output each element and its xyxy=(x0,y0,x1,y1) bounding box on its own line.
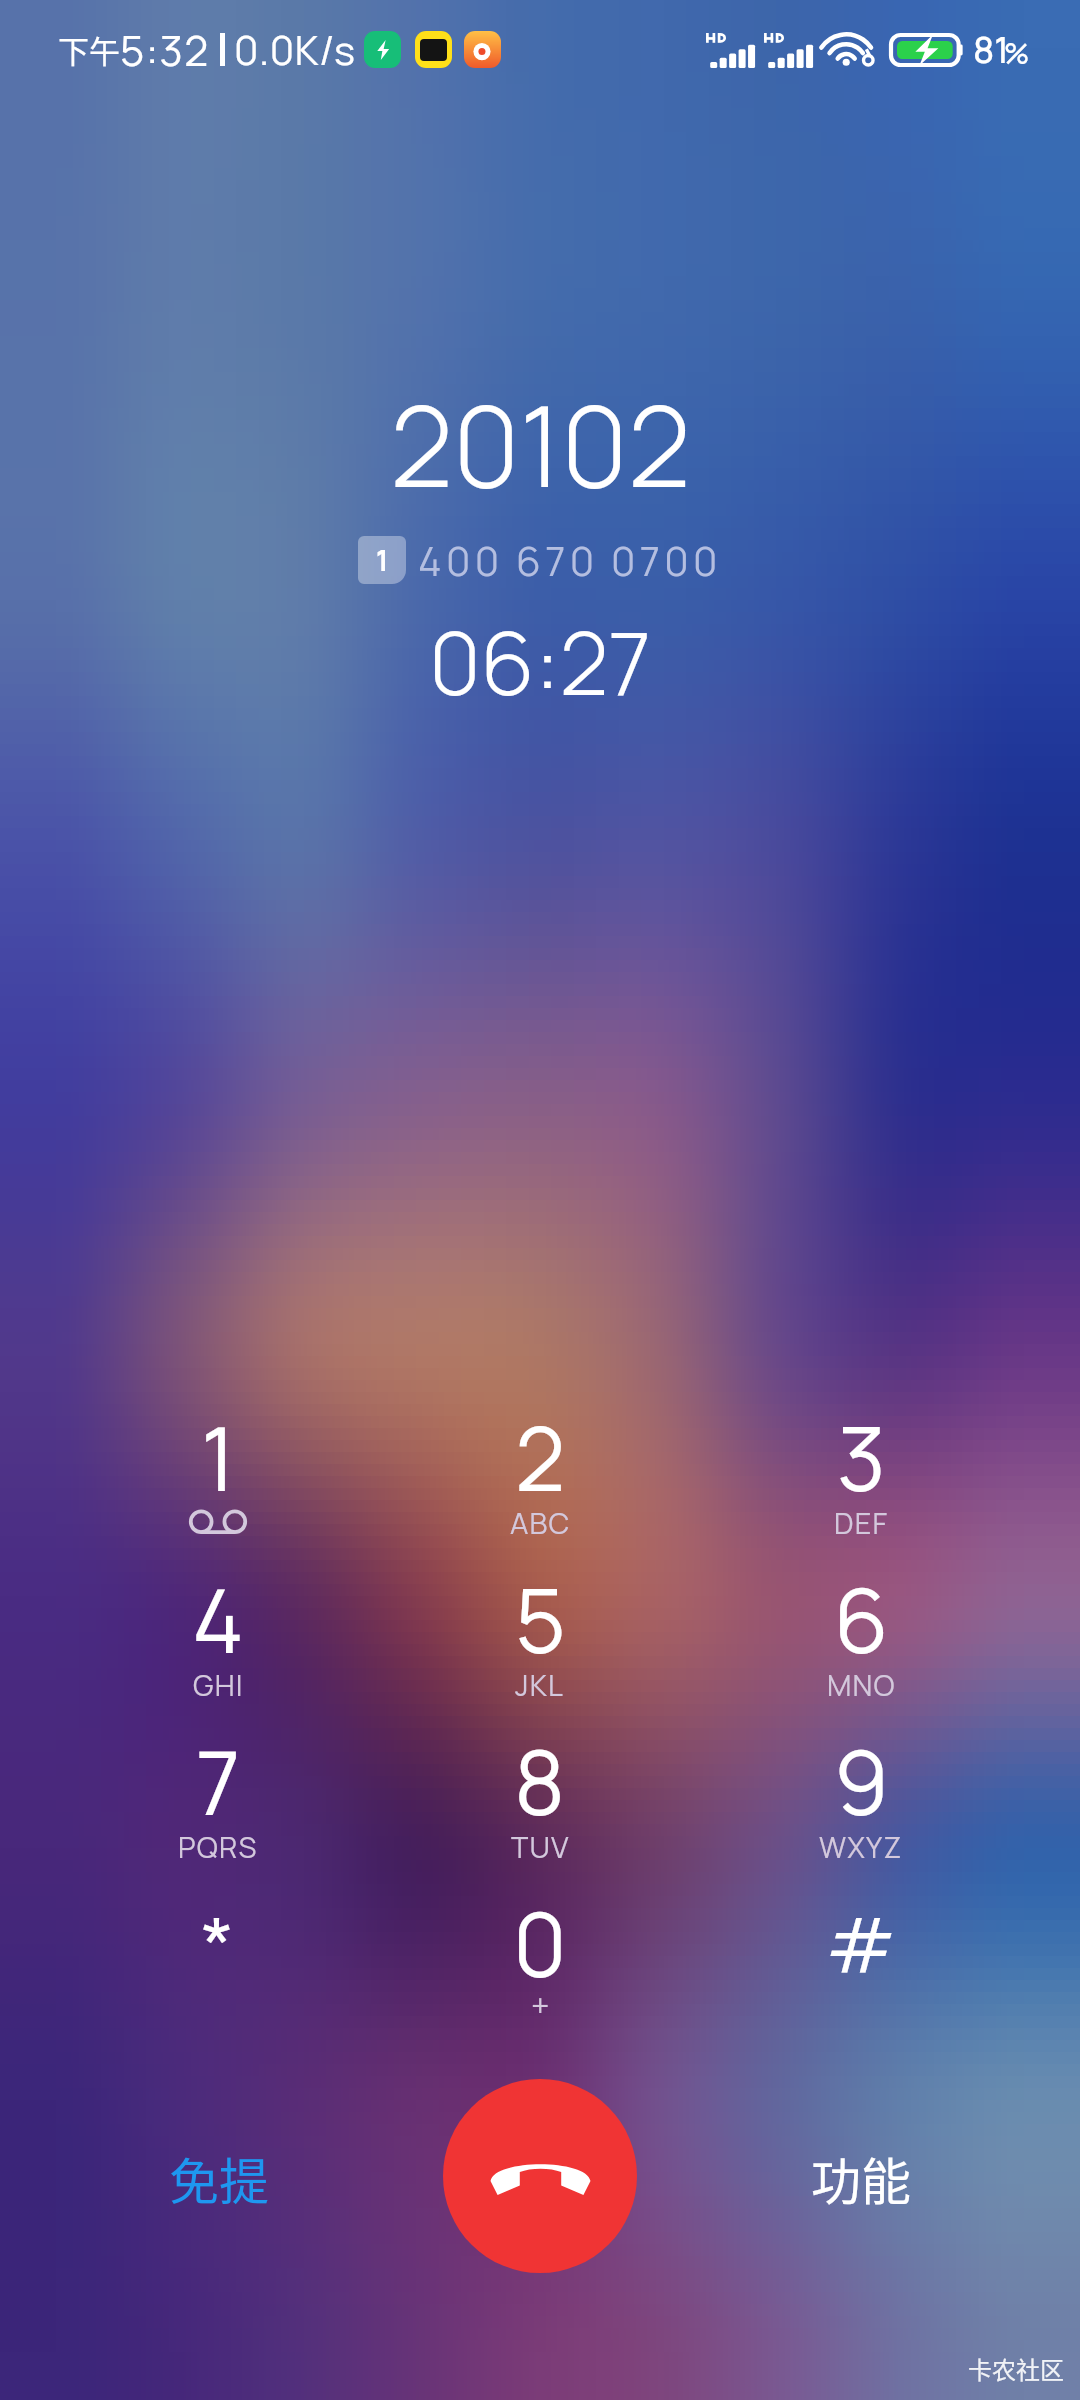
staticText: + xyxy=(531,1983,550,2027)
staticText: 4 xyxy=(192,1559,244,1679)
staticText: 9 xyxy=(834,1721,889,1841)
staticText: 下午 xyxy=(58,27,120,72)
button[interactable] xyxy=(68,1389,368,1541)
staticText: MNO xyxy=(827,1665,896,1705)
staticText: WXYZ xyxy=(819,1827,903,1867)
staticText: 3 xyxy=(837,1397,886,1517)
staticText: 0 xyxy=(513,1883,567,2003)
button[interactable] xyxy=(68,1875,368,2027)
button[interactable]: End call xyxy=(443,2079,637,2273)
staticText: 卡农社区 xyxy=(968,2351,1064,2386)
button[interactable] xyxy=(390,1389,690,1541)
button[interactable] xyxy=(390,1875,690,2027)
button[interactable]: 功能 xyxy=(756,2114,966,2242)
staticText: 6 xyxy=(834,1559,889,1679)
button[interactable] xyxy=(711,1389,1011,1541)
staticText: 0.0K/s xyxy=(234,22,356,77)
staticText: 5 xyxy=(515,1559,566,1679)
button[interactable] xyxy=(390,1713,690,1865)
staticText: 7 xyxy=(196,1721,241,1841)
button[interactable] xyxy=(711,1713,1011,1865)
staticText: 06:27 xyxy=(429,602,652,714)
staticText: 20102 xyxy=(390,368,691,514)
staticText: JKL xyxy=(515,1665,565,1705)
button[interactable] xyxy=(390,1551,690,1703)
staticText: DEF xyxy=(834,1503,889,1543)
button[interactable] xyxy=(68,1713,368,1865)
staticText: 1 xyxy=(201,1397,236,1517)
staticText: % xyxy=(1004,34,1030,72)
button[interactable]: 免提 xyxy=(114,2114,324,2242)
staticText: 1 xyxy=(376,541,389,579)
staticText: PQRS xyxy=(178,1827,258,1867)
staticText: 功能 xyxy=(811,2142,911,2214)
staticText: * xyxy=(201,1891,235,1995)
button[interactable] xyxy=(711,1875,1011,2027)
staticText: 81 xyxy=(973,25,1009,74)
staticText: 8 xyxy=(514,1721,566,1841)
button[interactable] xyxy=(68,1551,368,1703)
staticText: # xyxy=(826,1891,896,1995)
staticText: GHI xyxy=(193,1665,244,1705)
staticText: 2 xyxy=(515,1397,566,1517)
button[interactable] xyxy=(711,1551,1011,1703)
staticText: ABC xyxy=(510,1503,571,1543)
staticText: 5:32 xyxy=(120,21,210,77)
staticText: 400 670 0700 xyxy=(418,533,722,588)
staticText: TUV xyxy=(511,1827,570,1867)
staticText: 免提 xyxy=(169,2142,269,2214)
